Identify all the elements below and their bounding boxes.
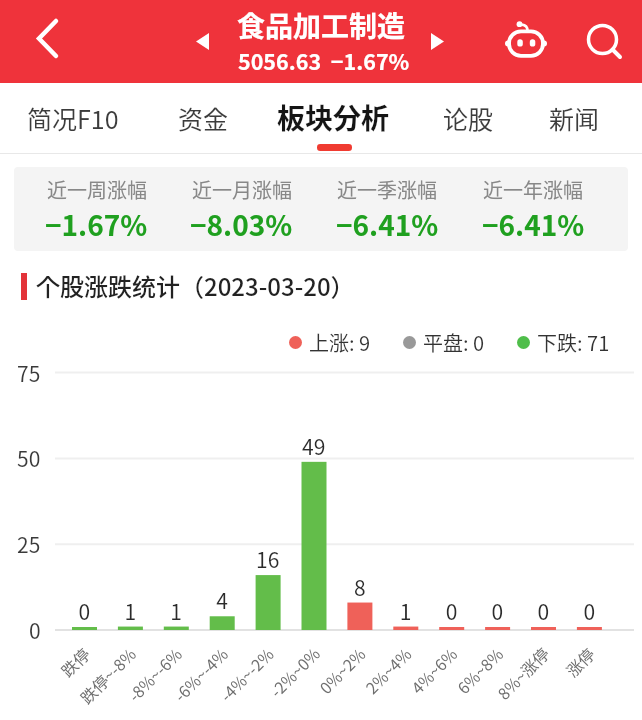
staticText: 资金 (178, 100, 229, 136)
staticText: 论股 (443, 100, 494, 136)
staticText: −6.41% (336, 204, 439, 245)
staticText: 新闻 (549, 100, 600, 136)
staticText: 个股涨跌统计（2023-03-20） (36, 268, 355, 303)
staticText: 下跌: 71 (537, 328, 610, 357)
staticText: 近一月涨幅 (192, 175, 292, 204)
staticText: 近一年涨幅 (483, 175, 583, 204)
staticText: −8.03% (190, 204, 293, 245)
staticText: 近一季涨幅 (337, 175, 437, 204)
staticText: 平盘: 0 (423, 328, 485, 357)
staticText: 近一周涨幅 (47, 175, 147, 204)
staticText: 上涨: 9 (309, 328, 371, 357)
staticText: 5056.63 −1.67% (238, 45, 410, 76)
staticText: 板块分析 (277, 97, 390, 138)
staticText: 食品加工制造 (237, 5, 406, 46)
staticText: −1.67% (45, 204, 148, 245)
staticText: 简况F10 (27, 100, 119, 136)
staticText: −6.41% (482, 204, 585, 245)
